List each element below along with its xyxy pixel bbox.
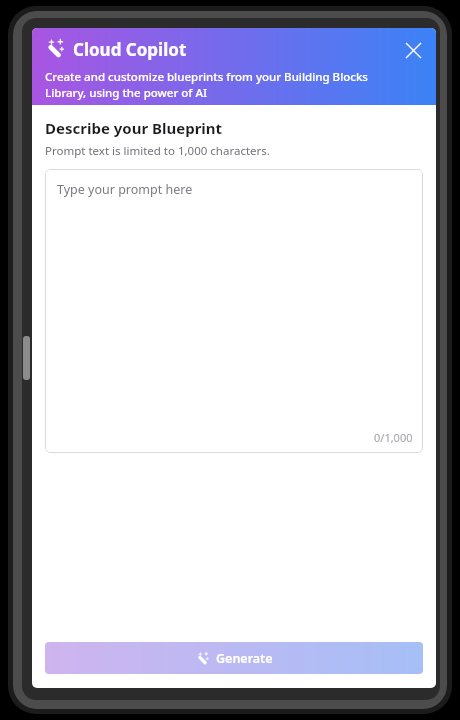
staticText: Type your prompt here bbox=[57, 181, 193, 198]
staticText: Cloud Copilot bbox=[73, 38, 187, 61]
staticText: Create and customize blueprints from you… bbox=[45, 69, 381, 100]
staticText: 0/1,000 bbox=[374, 430, 413, 445]
button[interactable]: Generate bbox=[45, 642, 423, 674]
button[interactable]: Close bbox=[396, 33, 430, 67]
staticText: Generate bbox=[216, 650, 273, 667]
staticText: Prompt text is limited to 1,000 characte… bbox=[45, 143, 270, 159]
button[interactable]: Type your prompt here bbox=[45, 169, 423, 453]
staticText: Describe your Blueprint bbox=[45, 118, 223, 138]
